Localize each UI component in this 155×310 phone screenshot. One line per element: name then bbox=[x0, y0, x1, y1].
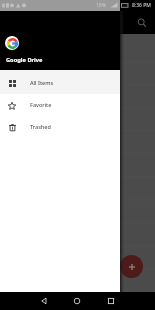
button[interactable]: Create new bbox=[120, 255, 143, 278]
button[interactable]: Search bbox=[134, 15, 150, 31]
staticText: Favorite bbox=[30, 101, 52, 108]
staticText: Google Drive bbox=[6, 56, 43, 64]
staticText: 10% bbox=[96, 2, 106, 9]
staticText: 8:36 PM bbox=[132, 2, 151, 9]
button[interactable]: Recent apps bbox=[106, 296, 116, 306]
button[interactable]: Favorite bbox=[0, 94, 120, 116]
button[interactable]: All Items bbox=[0, 70, 120, 94]
staticText: Trashed bbox=[30, 123, 51, 130]
staticText: All Items bbox=[30, 79, 54, 86]
button[interactable]: Trashed bbox=[0, 116, 120, 138]
button[interactable]: Back bbox=[39, 296, 49, 306]
button[interactable]: Home bbox=[72, 296, 82, 306]
